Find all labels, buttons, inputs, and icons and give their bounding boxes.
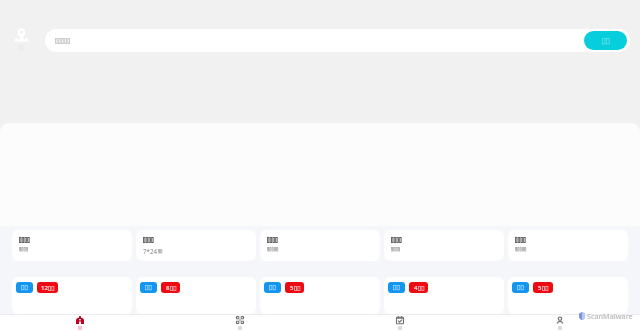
staticText: 12	[41, 284, 48, 292]
button[interactable]: 5	[260, 277, 380, 314]
button[interactable]	[508, 230, 628, 261]
button[interactable]: Orders	[320, 315, 480, 331]
staticText: 8	[166, 284, 170, 292]
staticText: 7*24	[143, 247, 158, 255]
staticText: 5	[290, 284, 294, 292]
button[interactable]: 12	[12, 277, 132, 314]
staticText: 4	[414, 284, 418, 292]
button[interactable]: Profile	[480, 315, 640, 331]
button[interactable]: Categories	[160, 315, 320, 331]
button[interactable]	[260, 230, 380, 261]
button[interactable]: Home	[0, 315, 160, 331]
button[interactable]: Search	[45, 29, 630, 52]
button[interactable]: 5	[508, 277, 628, 314]
button[interactable]: 4	[384, 277, 504, 314]
button[interactable]: Search	[584, 31, 627, 50]
staticText: ScanMalware	[587, 311, 633, 321]
button[interactable]: Location	[13, 28, 29, 50]
button[interactable]	[12, 230, 132, 261]
button[interactable]: 7*24	[136, 230, 256, 261]
staticText: 5	[538, 284, 542, 292]
button[interactable]	[384, 230, 504, 261]
button[interactable]: 8	[136, 277, 256, 314]
